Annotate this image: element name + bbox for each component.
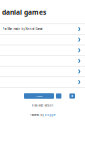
- button[interactable]: View web version: [0, 104, 85, 107]
- staticText: Home: [36, 94, 42, 98]
- staticText: Powered by: [29, 113, 44, 117]
- staticText: danial games: [2, 7, 46, 17]
- staticText: Blogger: [44, 113, 55, 117]
- button[interactable]: [0, 56, 85, 66]
- staticText: Pac Man made by Neeral Gamat: [2, 27, 42, 31]
- button[interactable]: Home: [24, 93, 54, 99]
- button[interactable]: Next page: [69, 93, 75, 99]
- button[interactable]: [0, 77, 85, 88]
- button[interactable]: [0, 45, 85, 56]
- button[interactable]: [0, 35, 85, 45]
- button[interactable]: [0, 66, 85, 77]
- button[interactable]: Previous page: [56, 93, 61, 99]
- staticText: View web version: [31, 104, 53, 107]
- button[interactable]: Pac Man made by Neeral Gamat: [0, 24, 85, 35]
- button[interactable]: Blogger: [44, 113, 55, 117]
